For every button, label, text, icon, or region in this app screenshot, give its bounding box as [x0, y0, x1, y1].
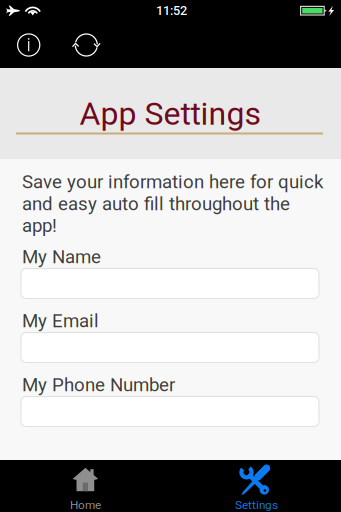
button[interactable]: Information [6, 22, 52, 68]
button[interactable]: Refresh [63, 22, 109, 68]
staticText: My Email [22, 310, 99, 332]
staticText: Settings [235, 498, 278, 512]
button[interactable]: Home [0, 460, 170, 512]
staticText: and easy auto fill throughout the [22, 193, 290, 215]
button[interactable]: Settings [170, 460, 341, 512]
staticText: 11:52 [156, 3, 187, 18]
staticText: app! [22, 215, 57, 237]
staticText: My Name [22, 246, 101, 268]
staticText: App Settings [79, 95, 261, 132]
staticText: Home [70, 498, 101, 512]
staticText: My Phone Number [22, 374, 175, 396]
staticText: Save your information here for quick [22, 171, 323, 193]
